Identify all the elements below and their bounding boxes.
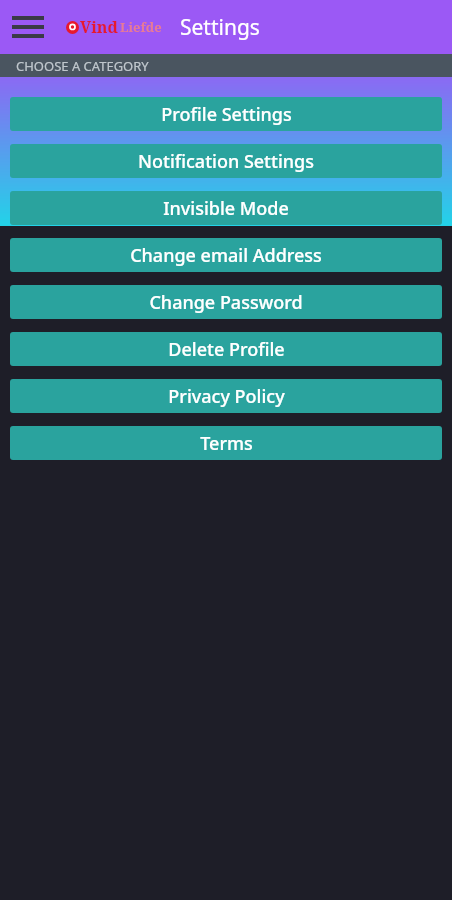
button[interactable]: Notification Settings [10, 144, 442, 178]
button[interactable]: Privacy Policy [10, 379, 442, 413]
staticText: CHOOSE A CATEGORY [16, 57, 149, 75]
staticText: Notification Settings [138, 149, 314, 174]
staticText: Vind [80, 16, 118, 38]
staticText: Invisible Mode [163, 196, 289, 221]
button[interactable]: Change Password [10, 285, 442, 319]
staticText: Change email Address [130, 243, 322, 268]
button[interactable]: CHOOSE A CATEGORY [0, 54, 452, 77]
staticText: Change Password [149, 290, 303, 315]
button[interactable]: Open navigation menu [6, 7, 50, 47]
staticText: Terms [200, 431, 253, 456]
button[interactable]: Delete Profile [10, 332, 442, 366]
staticText: Delete Profile [168, 337, 285, 362]
staticText: Profile Settings [161, 102, 292, 127]
button[interactable]: Profile Settings [10, 97, 442, 131]
button[interactable]: Terms [10, 426, 442, 460]
staticText: Settings [180, 13, 260, 42]
staticText: Privacy Policy [168, 384, 285, 409]
staticText: Liefde [120, 18, 162, 36]
button[interactable]: Invisible Mode [10, 191, 442, 225]
button[interactable]: Change email Address [10, 238, 442, 272]
